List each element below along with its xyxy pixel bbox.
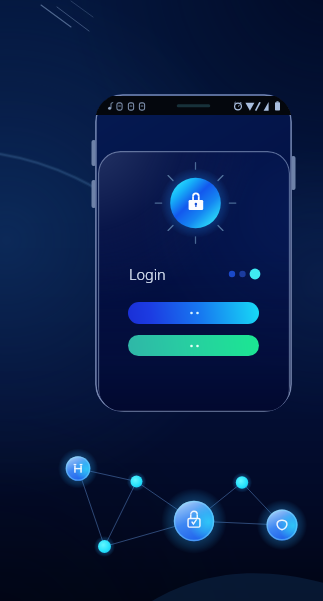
button[interactable]: Secure login [152,159,236,243]
button[interactable] [128,302,259,324]
button[interactable] [128,335,259,356]
staticText: Login [129,264,166,284]
